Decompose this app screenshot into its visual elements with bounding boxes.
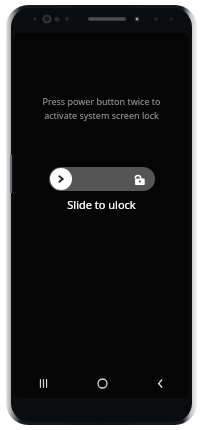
button[interactable]: Slide to unlock xyxy=(50,168,72,190)
button[interactable]: Slide to unlock xyxy=(49,167,155,191)
button[interactable]: Recents xyxy=(14,368,73,398)
button[interactable]: Home xyxy=(73,368,131,398)
staticText: Slide to ulock xyxy=(67,197,136,212)
staticText: Press power button twice to activate sys… xyxy=(22,95,181,122)
button[interactable]: Back xyxy=(131,368,189,398)
